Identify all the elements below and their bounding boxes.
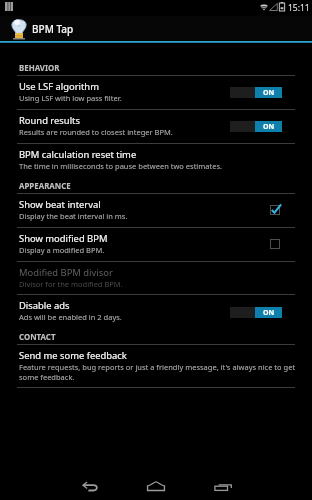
- staticText: APPEARANCE: [19, 181, 71, 192]
- staticText: Show modified BPM: [19, 232, 108, 245]
- staticText: Ads will be enabled in 2 days.: [19, 312, 122, 322]
- staticText: Results are rounded to closest integer B…: [19, 127, 173, 137]
- staticText: ON: [263, 88, 275, 98]
- staticText: BPM calculation reset time: [19, 148, 137, 161]
- staticText: ON: [263, 122, 275, 132]
- button[interactable]: Back: [62, 448, 118, 500]
- staticText: Show beat interval: [19, 198, 101, 211]
- button[interactable]: Send me some feedback: [0, 345, 312, 387]
- button[interactable]: Recents: [195, 448, 251, 500]
- staticText: Display a modified BPM.: [19, 245, 105, 255]
- staticText: The time in milliseconds to pause betwee…: [19, 161, 223, 171]
- button[interactable]: Show beat interval: [0, 194, 312, 227]
- staticText: Disable ads: [19, 299, 70, 312]
- button[interactable]: Show modified BPM: [0, 228, 312, 261]
- button[interactable]: Use LSF algorithm: [0, 76, 312, 109]
- button[interactable]: Home: [128, 448, 184, 500]
- staticText: BEHAVIOR: [19, 63, 60, 74]
- staticText: 15:11: [288, 2, 310, 14]
- button[interactable]: BPM Tap: [0, 16, 312, 41]
- staticText: BPM Tap: [32, 22, 74, 36]
- staticText: ON: [263, 308, 275, 318]
- button[interactable]: BPM calculation reset time: [0, 144, 312, 179]
- staticText: Use LSF algorithm: [19, 80, 99, 93]
- staticText: Round results: [19, 114, 80, 127]
- staticText: CONTACT: [19, 332, 56, 343]
- staticText: Modified BPM divisor: [19, 266, 113, 279]
- staticText: Feature requests, bug reports or just a …: [19, 362, 296, 382]
- staticText: Send me some feedback: [19, 349, 127, 362]
- staticText: Display the beat interval in ms.: [19, 211, 128, 221]
- button[interactable]: Round results: [0, 110, 312, 143]
- button[interactable]: Disable ads: [0, 295, 312, 329]
- staticText: Using LSF with low pass filter.: [19, 93, 122, 103]
- button[interactable]: Modified BPM divisor: [0, 262, 312, 294]
- staticText: Divisor for the modified BPM.: [19, 279, 123, 289]
